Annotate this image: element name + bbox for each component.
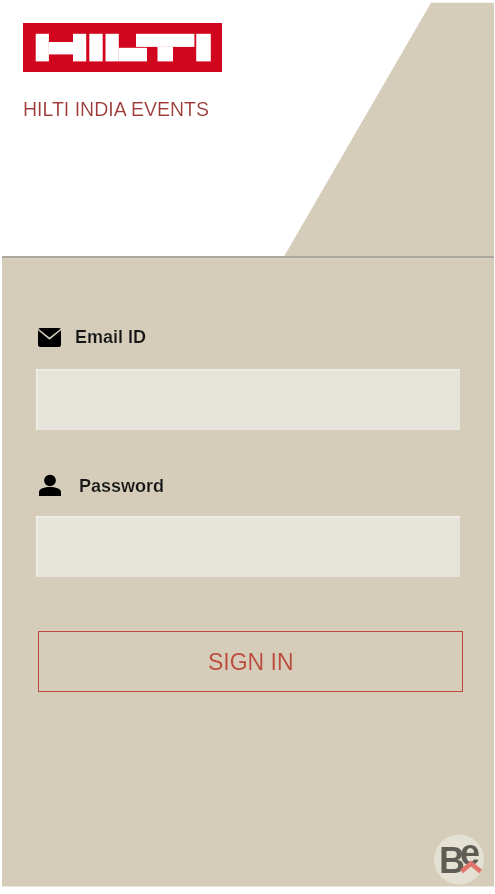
other: Hilti logo	[23, 23, 222, 72]
staticText: e	[460, 832, 481, 872]
staticText: Email ID	[75, 327, 147, 347]
staticText: HILTI INDIA EVENTS	[23, 98, 210, 120]
staticText: Password	[79, 476, 165, 496]
button[interactable]: SIGN IN	[38, 631, 463, 692]
staticText: B	[439, 840, 465, 880]
staticText: SIGN IN	[208, 649, 294, 675]
